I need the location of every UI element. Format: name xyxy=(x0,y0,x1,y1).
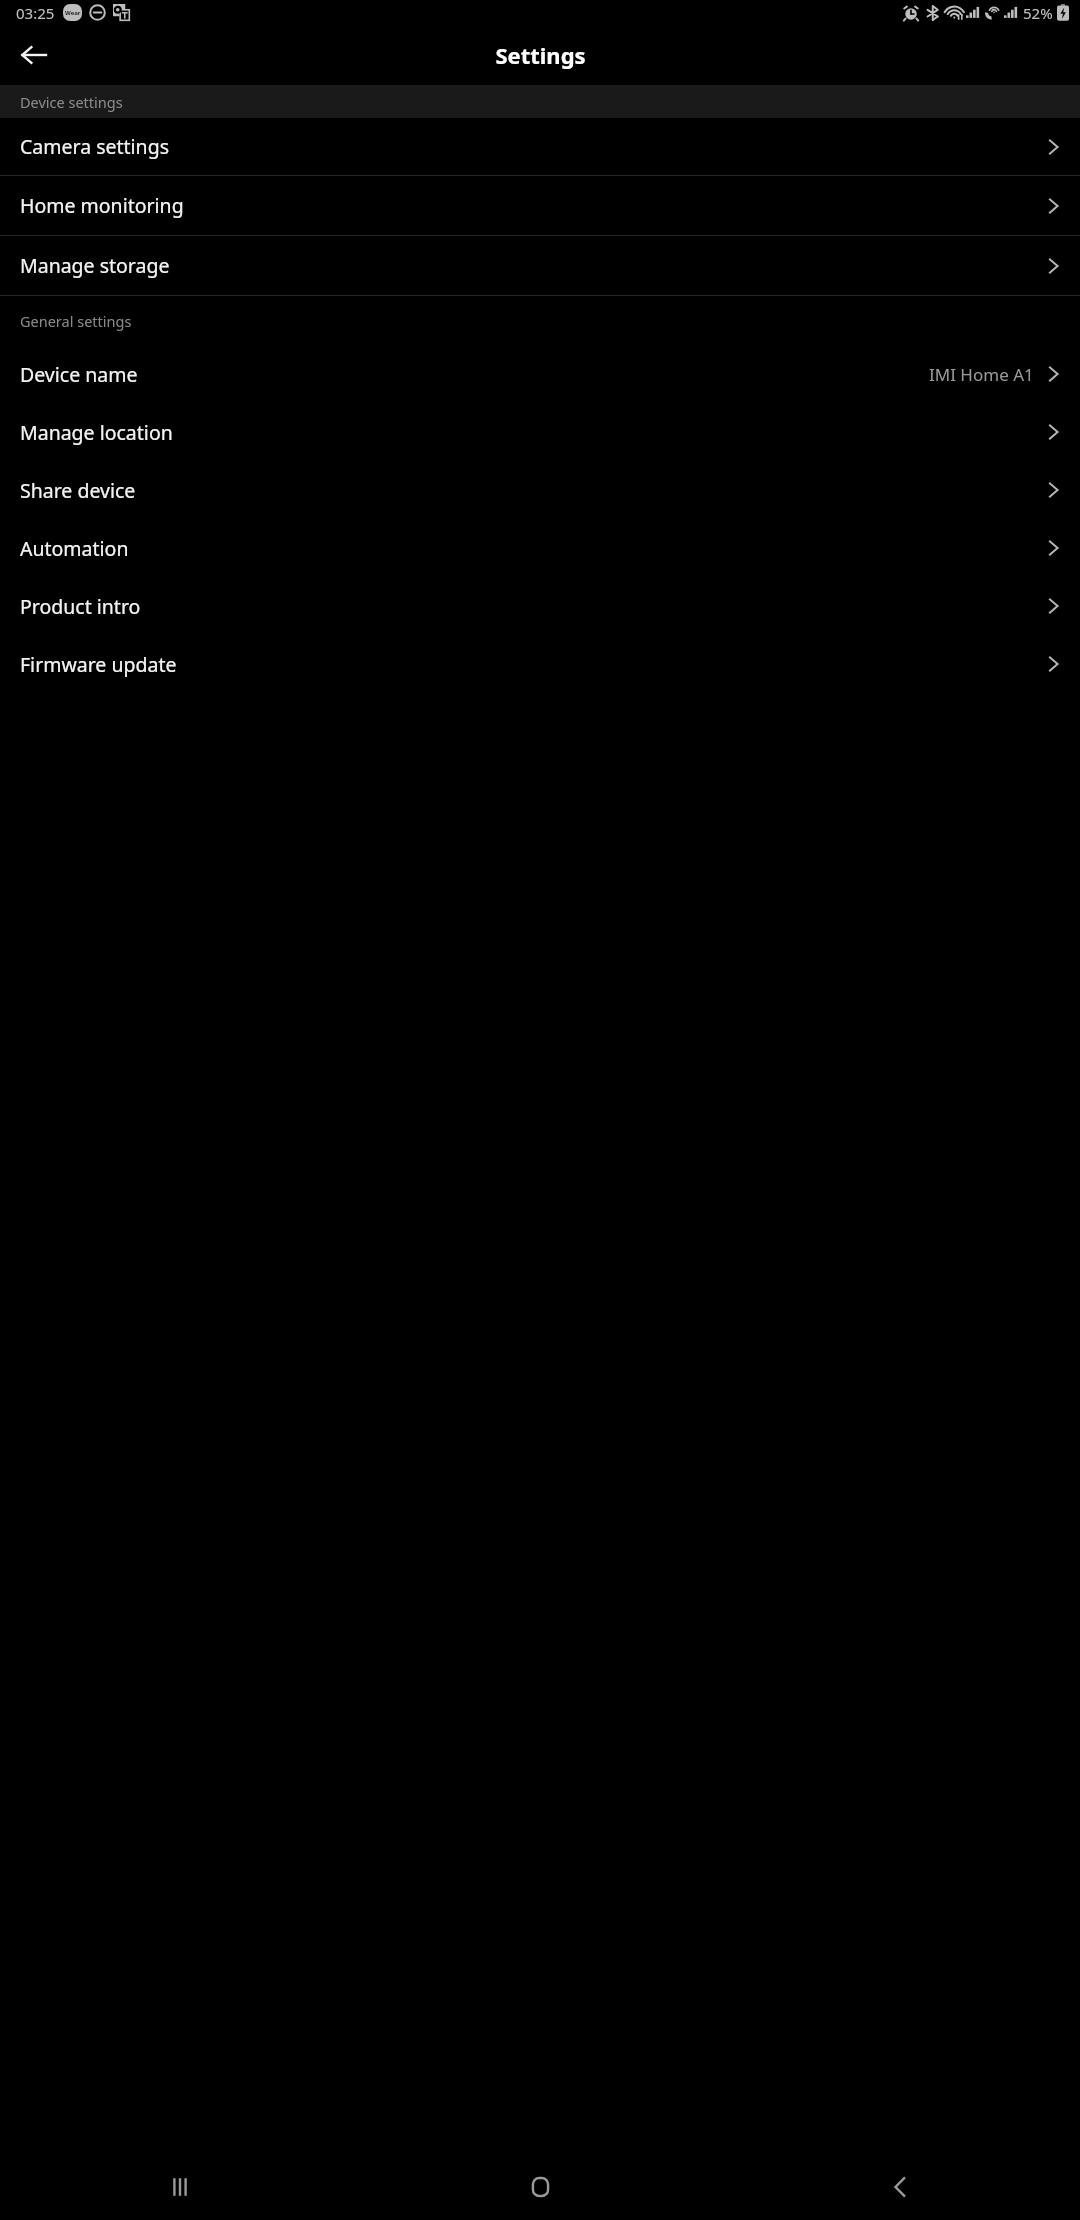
staticText: Device name xyxy=(20,361,138,388)
staticText: IMI Home A1 xyxy=(929,363,1034,386)
button[interactable]: Recents xyxy=(0,2154,360,2220)
staticText: Share device xyxy=(20,477,136,504)
staticText: 52% xyxy=(1023,3,1053,23)
staticText: Camera settings xyxy=(20,133,169,160)
button[interactable]: Back xyxy=(8,29,60,81)
staticText: General settings xyxy=(20,311,132,331)
staticText: Manage location xyxy=(20,419,173,446)
button[interactable]: Automation xyxy=(0,519,1080,577)
button[interactable]: Manage location xyxy=(0,403,1080,461)
staticText: Manage storage xyxy=(20,252,170,279)
button[interactable]: Firmware update xyxy=(0,635,1080,693)
staticText: Product intro xyxy=(20,593,141,620)
button[interactable]: Camera settings xyxy=(0,118,1080,175)
staticText: Firmware update xyxy=(20,651,177,678)
button[interactable]: Product intro xyxy=(0,577,1080,635)
button[interactable]: Device name xyxy=(0,345,1080,403)
staticText: Device settings xyxy=(20,92,123,112)
button[interactable]: Share device xyxy=(0,461,1080,519)
staticText: 03:25 xyxy=(16,3,55,23)
staticText: Settings xyxy=(495,40,586,70)
staticText: Home monitoring xyxy=(20,192,184,219)
button[interactable]: Back xyxy=(720,2154,1080,2220)
staticText: Automation xyxy=(20,535,129,562)
staticText: Wear xyxy=(65,9,81,17)
button[interactable]: Manage storage xyxy=(0,236,1080,295)
button[interactable]: Home monitoring xyxy=(0,176,1080,235)
button[interactable]: Home xyxy=(360,2154,720,2220)
